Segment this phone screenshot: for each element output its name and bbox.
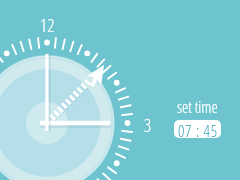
staticText: set time [177,96,218,118]
staticText: 07 : 45 [178,120,218,138]
button[interactable]: 07 : 45 [174,120,221,138]
staticText: 12 [40,13,55,38]
staticText: 3 [144,113,152,138]
